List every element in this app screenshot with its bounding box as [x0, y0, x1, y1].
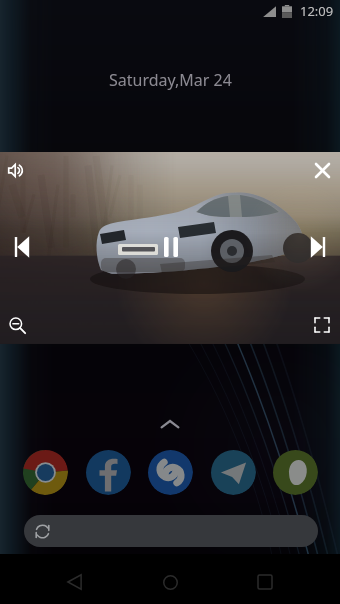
button[interactable]: Telegram [210, 449, 256, 495]
button[interactable]: Zoom out [0, 303, 39, 347]
button[interactable]: Recents [243, 560, 287, 604]
button[interactable]: Fullscreen [300, 303, 340, 347]
button[interactable]: Search [24, 515, 318, 547]
button[interactable]: Chrome [22, 449, 68, 495]
button[interactable]: Facebook [85, 449, 131, 495]
button[interactable]: Previous [0, 225, 44, 269]
button[interactable]: Evernote [272, 449, 318, 495]
button[interactable]: Back [52, 560, 96, 604]
button[interactable]: Next [296, 225, 340, 269]
button[interactable]: Close [306, 154, 338, 186]
staticText: 12:09 [300, 2, 334, 20]
button[interactable]: Pause [149, 225, 193, 269]
staticText: Saturday,Mar 24 [109, 69, 232, 91]
button[interactable]: Shazam [147, 449, 193, 495]
button[interactable]: Volume [1, 154, 33, 186]
button[interactable]: Home [148, 560, 192, 604]
